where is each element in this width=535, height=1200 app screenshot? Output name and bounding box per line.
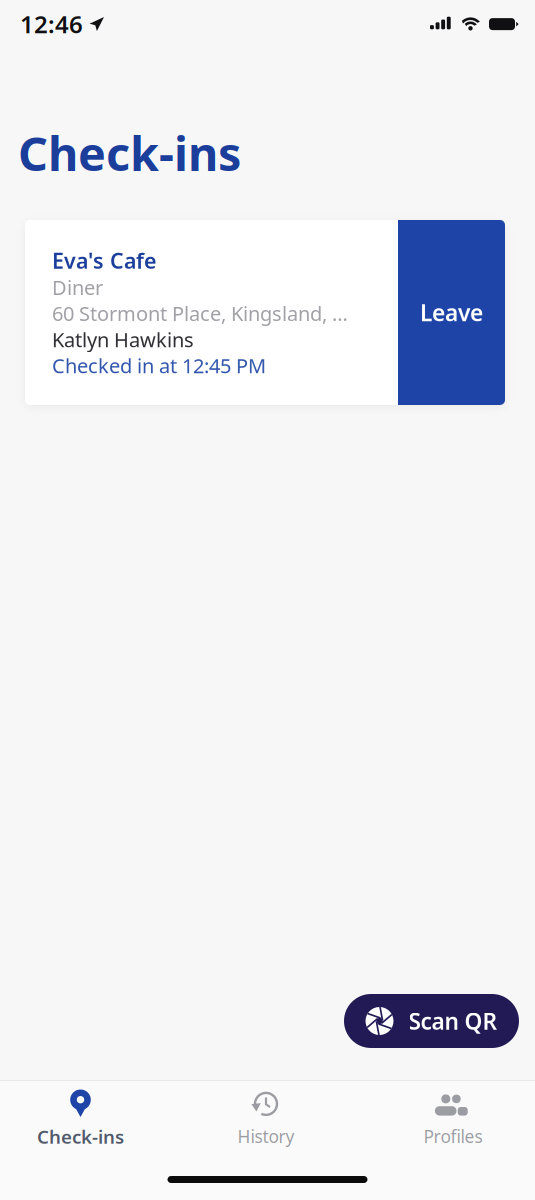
staticText: Checked in at 12:45 PM xyxy=(52,352,266,379)
staticText: Eva's Cafe xyxy=(52,246,156,274)
staticText: 60 Stormont Place, Kingsland, … xyxy=(52,300,348,327)
staticText: Check-ins xyxy=(37,1124,124,1149)
staticText: Profiles xyxy=(423,1125,482,1148)
button[interactable]: Check-ins xyxy=(0,1081,161,1149)
staticText: Scan QR xyxy=(408,1006,497,1036)
button[interactable]: Scan QR xyxy=(344,994,519,1048)
staticText: Katlyn Hawkins xyxy=(52,326,194,353)
staticText: 12:46 xyxy=(20,8,83,40)
button[interactable]: History xyxy=(161,1082,371,1148)
staticText: History xyxy=(237,1125,294,1148)
staticText: Diner xyxy=(52,274,103,301)
staticText: Leave xyxy=(420,297,483,327)
button[interactable]: Profiles xyxy=(371,1082,535,1148)
button[interactable]: Leave xyxy=(398,220,505,405)
staticText: Check-ins xyxy=(18,122,241,184)
